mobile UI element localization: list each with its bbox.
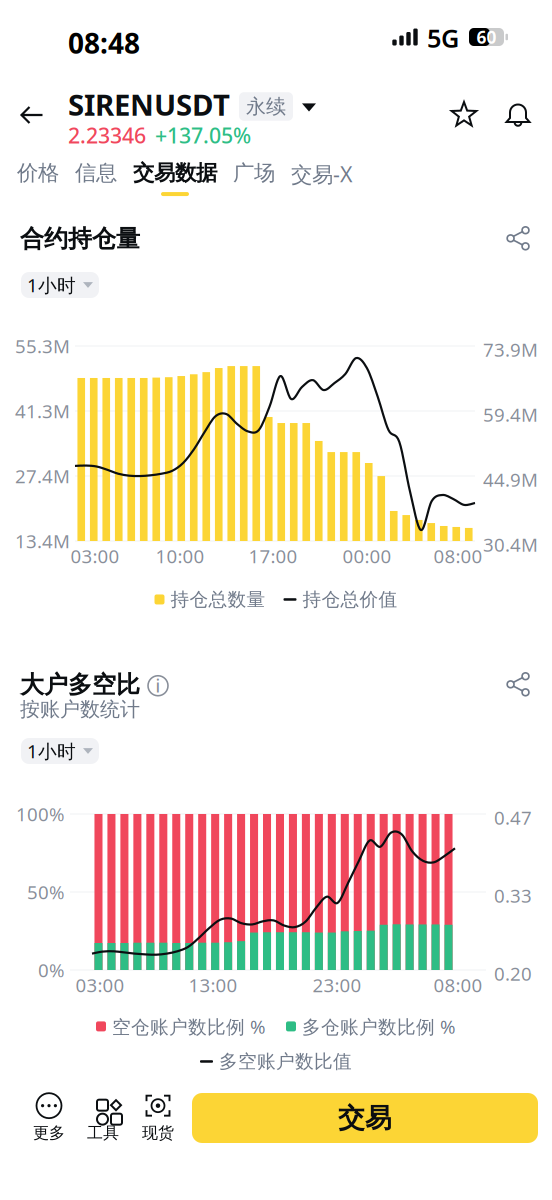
staticText: 1小时 xyxy=(27,273,76,297)
staticText: 多空账户数比值 xyxy=(219,1050,352,1073)
staticText: 41.3M xyxy=(15,399,70,423)
button[interactable]: 交易-X xyxy=(283,156,361,198)
staticText: 按账户数统计 xyxy=(20,697,140,722)
staticText: 更多 xyxy=(33,1123,65,1143)
staticText: 50% xyxy=(27,880,65,904)
staticText: 30.4M xyxy=(483,532,538,557)
staticText: 03:00 xyxy=(70,544,119,568)
staticText: 03:00 xyxy=(75,973,124,997)
staticText: 永续 xyxy=(246,94,286,119)
button[interactable]: 1小时 xyxy=(21,738,99,764)
button[interactable]: 广场 xyxy=(225,156,283,196)
staticText: 价格 xyxy=(17,160,59,186)
button[interactable]: Price alerts xyxy=(498,95,538,135)
staticText: 13:00 xyxy=(188,973,237,997)
staticText: 0.47 xyxy=(494,805,532,830)
staticText: 工具 xyxy=(87,1123,119,1143)
staticText: 44.9M xyxy=(483,467,538,492)
staticText: 持仓总数量 xyxy=(170,588,265,611)
staticText: 广场 xyxy=(233,160,275,186)
staticText: 10:00 xyxy=(155,544,204,568)
staticText: 交易数据 xyxy=(133,160,217,186)
button[interactable]: 更多 xyxy=(22,1092,76,1144)
button[interactable]: 信息 xyxy=(67,156,125,196)
staticText: 55.3M xyxy=(15,334,70,358)
staticText: 08:48 xyxy=(68,24,140,62)
staticText: 交易 xyxy=(338,1102,392,1134)
button[interactable]: Back xyxy=(10,93,54,137)
staticText: i xyxy=(155,674,160,697)
staticText: 合约持仓量 xyxy=(20,224,140,253)
button[interactable]: 交易 xyxy=(192,1093,538,1143)
staticText: 空仓账户数比例 % xyxy=(112,1014,266,1039)
staticText: 0% xyxy=(38,958,65,982)
staticText: 17:00 xyxy=(248,544,297,568)
staticText: 信息 xyxy=(75,160,117,186)
staticText: +137.05% xyxy=(155,121,251,149)
staticText: 0.33 xyxy=(494,883,532,908)
staticText: 持仓总价值 xyxy=(302,588,397,611)
staticText: 59.4M xyxy=(483,402,538,427)
staticText: 现货 xyxy=(142,1123,174,1143)
staticText: 多仓账户数比例 % xyxy=(302,1014,456,1039)
staticText: 0.20 xyxy=(494,961,532,986)
button[interactable]: 工具 xyxy=(76,1092,130,1144)
staticText: SIRENUSDT xyxy=(68,85,230,124)
staticText: 1小时 xyxy=(27,739,76,763)
staticText: 2.23346 xyxy=(68,121,146,149)
staticText: 大户多空比 xyxy=(20,670,140,699)
staticText: 60 xyxy=(476,25,496,48)
staticText: 08:00 xyxy=(433,544,482,568)
staticText: 08:00 xyxy=(433,973,482,997)
button[interactable]: Share xyxy=(506,672,532,698)
button[interactable]: Add to favorites xyxy=(444,95,484,135)
button[interactable]: 现货 xyxy=(131,1092,185,1144)
button[interactable]: 价格 xyxy=(9,156,67,196)
staticText: 27.4M xyxy=(15,464,70,488)
button[interactable]: 交易数据 xyxy=(125,156,225,196)
staticText: 13.4M xyxy=(15,529,70,553)
staticText: 00:00 xyxy=(342,544,391,568)
staticText: 交易-X xyxy=(291,160,353,188)
staticText: 100% xyxy=(16,802,65,826)
staticText: 73.9M xyxy=(483,337,538,362)
button[interactable]: 1小时 xyxy=(21,272,99,298)
staticText: 5G xyxy=(427,21,459,55)
button[interactable]: Share xyxy=(506,226,532,252)
staticText: 23:00 xyxy=(312,973,361,997)
